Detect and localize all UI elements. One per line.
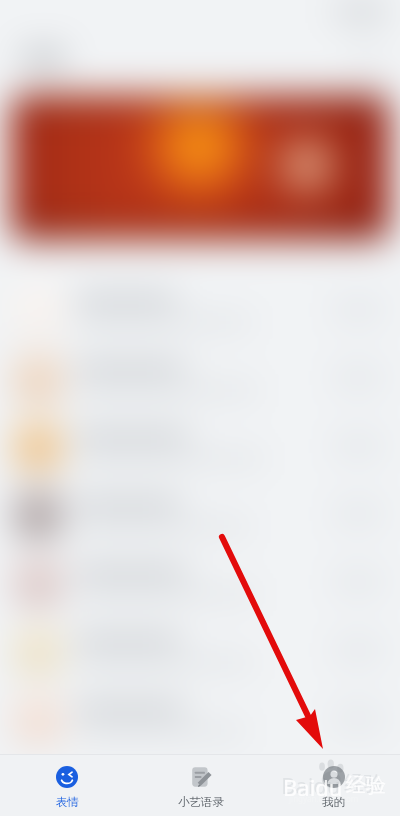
staticText: 表情 bbox=[56, 795, 79, 809]
button[interactable] bbox=[14, 548, 386, 616]
other: 我的 bbox=[323, 766, 345, 788]
button[interactable]: 小艺语录 bbox=[134, 755, 267, 809]
staticText: Baidu bbox=[283, 772, 343, 802]
other: 表情 bbox=[56, 766, 78, 788]
button[interactable] bbox=[14, 276, 386, 344]
button[interactable]: 表情 bbox=[0, 755, 134, 809]
staticText: 表情 bbox=[22, 46, 64, 72]
staticText: 经验 bbox=[344, 771, 384, 796]
button[interactable]: 我的 bbox=[267, 755, 400, 809]
staticText: 我的 bbox=[322, 795, 345, 809]
staticText: 经验 bbox=[346, 773, 386, 798]
button[interactable] bbox=[14, 616, 386, 684]
staticText: 小艺语录 bbox=[178, 795, 224, 809]
button[interactable] bbox=[14, 412, 386, 480]
button[interactable] bbox=[14, 480, 386, 548]
staticText: Baidu bbox=[281, 770, 341, 800]
button[interactable] bbox=[14, 684, 386, 752]
button[interactable] bbox=[11, 95, 389, 240]
other: 小艺语录 bbox=[190, 766, 212, 788]
button[interactable] bbox=[14, 344, 386, 412]
staticText: jingyan.baidu.com bbox=[289, 793, 359, 804]
button[interactable]: 搜索 bbox=[356, 48, 378, 70]
